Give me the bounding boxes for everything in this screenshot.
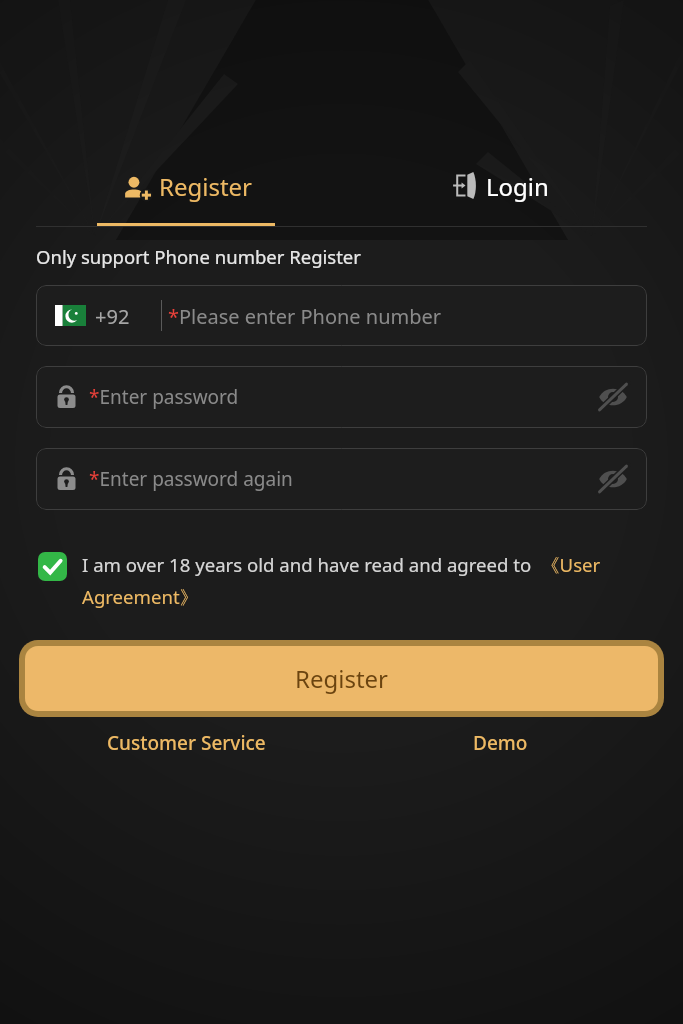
button[interactable]: Show password: [587, 453, 639, 505]
staticText: Login: [486, 170, 549, 203]
staticText: +92: [95, 303, 130, 330]
staticText: *Enter password: [89, 384, 239, 410]
staticText: Register: [159, 170, 253, 203]
button[interactable]: Customer Service: [36, 726, 336, 760]
button[interactable]: Register: [0, 160, 341, 232]
button[interactable]: Register: [25, 646, 658, 711]
staticText: I am over 18 years old and have read and…: [82, 552, 652, 610]
button[interactable]: *Enter password: [36, 366, 647, 428]
staticText: Register: [295, 662, 389, 695]
button[interactable]: I am over 18 years old checkbox: [38, 552, 67, 581]
button[interactable]: Login: [341, 160, 683, 220]
staticText: Only support Phone number Register: [36, 244, 361, 269]
staticText: *Enter password again: [89, 466, 293, 492]
staticText: Demo: [473, 730, 528, 756]
button[interactable]: Show password: [587, 371, 639, 423]
staticText: *Please enter Phone number: [168, 303, 442, 330]
button[interactable]: +92: [36, 285, 647, 346]
staticText: Customer Service: [107, 730, 266, 756]
button[interactable]: *Enter password again: [36, 448, 647, 510]
button[interactable]: Demo: [400, 726, 600, 760]
